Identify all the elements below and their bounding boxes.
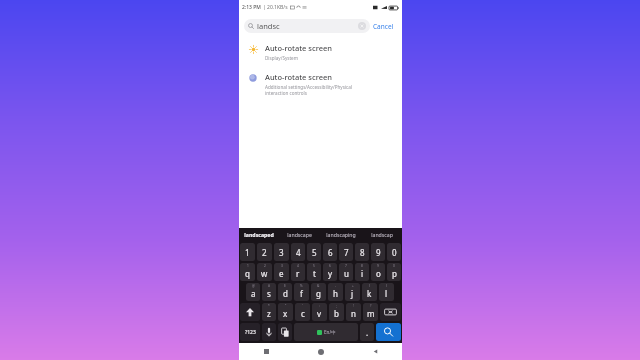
button[interactable]: 0 (387, 263, 401, 281)
button[interactable]: : (312, 303, 327, 321)
button[interactable]: Backspace (380, 303, 401, 321)
staticText: landscape (287, 231, 312, 238)
staticText: 7 (345, 264, 347, 268)
button[interactable]: 7 (339, 243, 353, 261)
button[interactable]: Voice input (262, 323, 276, 341)
button[interactable]: ' (295, 303, 310, 321)
button[interactable]: - (328, 283, 343, 301)
staticText: g (316, 288, 321, 299)
staticText: " (285, 304, 287, 308)
button[interactable]: Auto-rotate screen (239, 37, 402, 66)
button[interactable]: landsc (244, 19, 370, 33)
button[interactable]: 8 (355, 263, 369, 281)
staticText: | 20.1KB/s (263, 4, 288, 11)
staticText: j (351, 288, 354, 299)
button[interactable]: 3 (274, 243, 289, 261)
button[interactable]: ! (346, 303, 361, 321)
button[interactable]: 4 (291, 263, 305, 281)
button[interactable]: landscape (279, 228, 320, 241)
staticText: q (245, 268, 250, 279)
button[interactable]: Home (294, 343, 348, 360)
button[interactable]: % (294, 283, 309, 301)
button[interactable]: 6 (323, 243, 337, 261)
staticText: - (335, 284, 337, 288)
staticText: ; (336, 304, 337, 308)
button[interactable]: * (262, 303, 276, 321)
staticText: r (296, 268, 300, 279)
button[interactable]: ( (362, 283, 377, 301)
button[interactable]: Search (376, 323, 401, 341)
staticText: 5 (312, 247, 317, 258)
staticText: 7 (344, 247, 349, 258)
staticText: m (367, 308, 375, 319)
button[interactable]: 2 (257, 263, 272, 281)
button[interactable]: 6 (323, 263, 337, 281)
button[interactable]: 9 (371, 243, 385, 261)
staticText: landscaping (326, 231, 356, 238)
staticText: 8 (360, 247, 365, 258)
staticText: t (313, 268, 316, 279)
button[interactable]: 8 (355, 243, 369, 261)
staticText: # (268, 284, 271, 288)
button[interactable]: 9 (371, 263, 385, 281)
staticText: s (267, 288, 271, 299)
button[interactable]: . (360, 323, 374, 341)
button[interactable]: ) (379, 283, 394, 301)
staticText: w (261, 268, 268, 279)
staticText: 3 (279, 247, 284, 258)
button[interactable]: landscap (361, 228, 402, 241)
staticText: 6 (329, 264, 331, 268)
staticText: + (352, 284, 354, 288)
button[interactable]: 1 (240, 263, 255, 281)
button[interactable]: & (311, 283, 326, 301)
staticText: i (361, 268, 364, 279)
button[interactable]: 5 (307, 263, 321, 281)
staticText: 0 (392, 247, 397, 258)
staticText: n (351, 308, 356, 319)
staticText: h (333, 288, 338, 299)
button[interactable]: ? (363, 303, 378, 321)
button[interactable]: landscaped (239, 228, 279, 241)
staticText: . (366, 327, 369, 338)
button[interactable]: # (262, 283, 276, 301)
staticText: 3 (281, 264, 283, 268)
staticText: c (301, 308, 305, 319)
staticText: & (317, 284, 320, 288)
button[interactable]: $ (278, 283, 292, 301)
staticText: 9 (377, 264, 379, 268)
staticText: ! (353, 304, 354, 308)
button[interactable]: ; (329, 303, 344, 321)
button[interactable]: Switch keyboard (278, 323, 292, 341)
staticText: 2 (264, 264, 266, 268)
button[interactable]: 7 (339, 263, 353, 281)
button[interactable]: landscaping (320, 228, 361, 241)
button[interactable]: 5 (307, 243, 321, 261)
staticText: f (300, 288, 303, 299)
button[interactable]: Recents (239, 343, 294, 360)
staticText: p (392, 268, 397, 279)
button[interactable]: En/中 (294, 323, 358, 341)
button[interactable]: 1 (240, 243, 255, 261)
button[interactable]: Back (348, 343, 402, 360)
button[interactable]: 0 (387, 243, 401, 261)
button[interactable]: 2 (257, 243, 272, 261)
button[interactable]: 4 (291, 243, 305, 261)
button[interactable]: Clear text (358, 22, 366, 30)
button[interactable]: Auto-rotate screen (239, 66, 402, 101)
staticText: ( (369, 284, 370, 288)
button[interactable]: @ (246, 283, 260, 301)
staticText: * (268, 304, 270, 308)
button[interactable]: + (345, 283, 360, 301)
staticText: Additional settings/Accessibility/Physic… (265, 84, 352, 96)
staticText: o (376, 268, 381, 279)
button[interactable]: 3 (274, 263, 289, 281)
staticText: ? (370, 304, 372, 308)
staticText: y (328, 268, 333, 279)
staticText: e (279, 268, 284, 279)
button[interactable]: Cancel (370, 20, 397, 33)
staticText: ?123 (245, 329, 256, 336)
button[interactable]: Shift (240, 303, 260, 321)
button[interactable]: ?123 (240, 323, 260, 341)
staticText: @ (252, 284, 255, 288)
button[interactable]: " (278, 303, 293, 321)
